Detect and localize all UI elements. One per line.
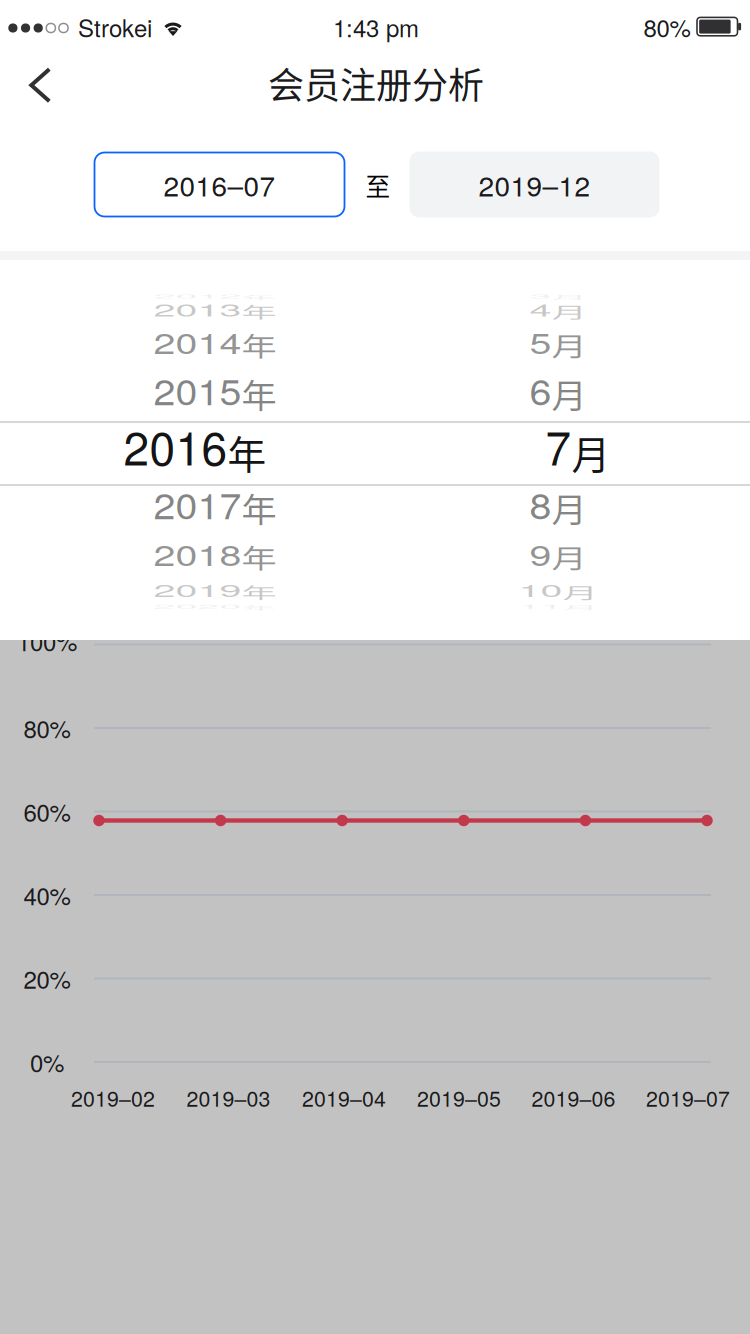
staticText: 5月 [529,314,586,371]
staticText: 2019年 [153,562,276,619]
staticText: 2016–07 [163,164,275,205]
staticText: 80% [23,711,70,745]
staticText: 至 [365,167,390,203]
staticText: 80% [643,10,690,44]
button[interactable]: 2016–07 [94,152,344,216]
staticText: 2015年 [153,362,276,419]
staticText: 2020年 [153,578,276,635]
staticText: 2017年 [153,476,276,533]
staticText: 0% [30,1045,64,1079]
staticText: 2014年 [153,314,276,371]
staticText: 2018年 [153,526,276,583]
staticText: Strokei [78,10,152,44]
staticText: 会员注册分析 [268,57,484,109]
staticText: 40% [23,878,70,912]
staticText: 2019–03 [186,1082,270,1113]
staticText: 3月 [529,268,586,325]
staticText: 2012年 [153,268,276,325]
staticText: 8月 [529,476,586,533]
staticText: 7月 [545,413,610,479]
button[interactable]: Back [2,49,78,121]
button[interactable]: 2019–12 [409,151,659,217]
staticText: 4月 [529,281,586,338]
staticText: 10月 [518,562,597,619]
staticText: 2019–05 [417,1082,501,1113]
staticText: 1:43 pm [333,10,419,44]
staticText: 6月 [529,362,586,419]
staticText: 2019–12 [478,164,590,205]
staticText: 11月 [518,578,597,635]
staticText: 60% [23,794,70,829]
staticText: 2016年 [123,413,266,479]
staticText: 2019–06 [531,1082,615,1113]
staticText: 2019–04 [302,1082,386,1113]
staticText: 20% [23,961,70,996]
staticText: 100% [17,624,77,658]
staticText: 2019–07 [646,1082,730,1113]
staticText: 2019–02 [71,1082,155,1113]
staticText: 9月 [529,526,586,583]
staticText: 2013年 [153,281,276,338]
